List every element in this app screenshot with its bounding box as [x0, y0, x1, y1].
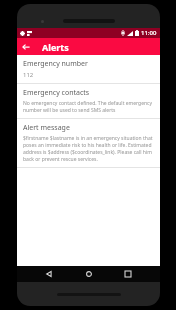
staticText: $firstname $lastname is in an emergency … [23, 135, 153, 163]
staticText: 112 [23, 71, 34, 79]
staticText: 11:00 [141, 29, 157, 37]
staticText: Alert message [23, 123, 70, 133]
button[interactable]: Back [41, 266, 57, 282]
button[interactable]: Emergency number [17, 55, 160, 83]
staticText: Alerts [42, 41, 69, 53]
button[interactable]: Home [81, 266, 97, 282]
staticText: Emergency number [23, 59, 88, 69]
button[interactable]: Emergency contacts [17, 84, 160, 118]
button[interactable]: Navigate up [17, 38, 35, 55]
staticText: No emergency contact defined. The defaul… [23, 100, 153, 114]
button[interactable]: Alert message [17, 119, 160, 167]
staticText: Emergency contacts [23, 88, 90, 98]
button[interactable]: Recent apps [120, 266, 136, 282]
